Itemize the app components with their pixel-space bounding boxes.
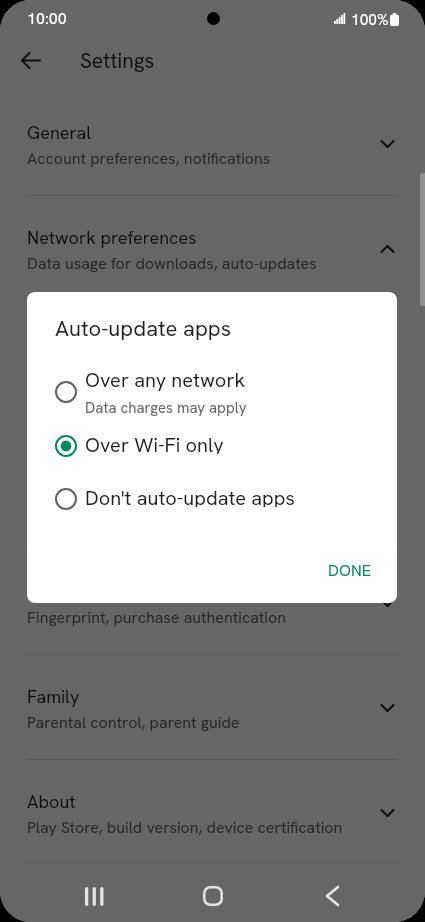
staticText: Parental control, parent guide <box>27 712 240 733</box>
button[interactable]: Home <box>189 872 237 920</box>
button[interactable]: Over any network <box>27 365 397 419</box>
staticText: General <box>27 121 92 144</box>
staticText: Data charges may apply <box>85 398 247 418</box>
staticText: DONE <box>328 560 372 581</box>
button[interactable]: General <box>0 91 425 195</box>
staticText: Auto-play videos <box>27 379 148 400</box>
button[interactable]: Recent apps <box>70 872 118 920</box>
staticText: Over any network <box>27 475 148 495</box>
staticText: App download preference <box>27 450 213 471</box>
staticText: 10:00 <box>27 8 67 29</box>
staticText: Network preferences <box>27 226 197 249</box>
staticText: Account preferences, notifications <box>27 148 271 169</box>
button[interactable]: Back <box>308 872 356 920</box>
staticText: Don't auto-update apps <box>85 485 295 507</box>
button[interactable]: Back <box>13 42 49 78</box>
staticText: Family <box>27 685 80 708</box>
staticText: Over Wi-Fi only <box>85 432 224 454</box>
button[interactable]: DONE <box>316 552 384 589</box>
button[interactable]: Authentication <box>0 550 425 654</box>
button[interactable]: About <box>0 760 425 864</box>
staticText: Data usage for downloads, auto-updates <box>27 253 317 274</box>
staticText: Auto-update apps <box>55 314 232 343</box>
staticText: 100% <box>351 9 389 29</box>
staticText: Over Wi-Fi only <box>27 404 131 424</box>
staticText: Over any network <box>85 367 246 393</box>
staticText: Auto-update apps <box>27 308 156 329</box>
staticText: Play Store, build version, device certif… <box>27 817 343 838</box>
staticText: Authentication <box>27 580 144 603</box>
staticText: Over Wi-Fi only <box>27 333 131 353</box>
button[interactable]: Network preferences <box>0 196 425 300</box>
button[interactable]: Family <box>0 655 425 759</box>
button[interactable]: Don't auto-update apps <box>27 488 397 510</box>
button[interactable]: Over Wi-Fi only <box>27 435 397 457</box>
staticText: About <box>27 790 76 813</box>
staticText: Settings <box>80 47 155 74</box>
staticText: Fingerprint, purchase authentication <box>27 607 286 628</box>
